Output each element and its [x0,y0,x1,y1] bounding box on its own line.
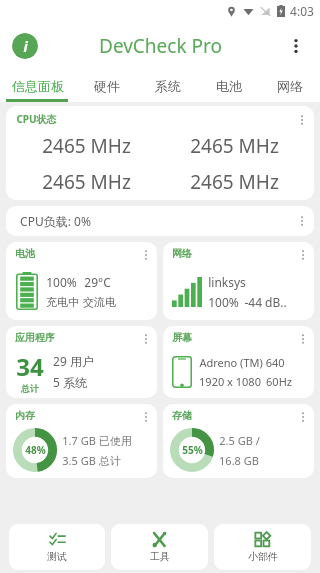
button[interactable]: CPU状态 [6,106,314,200]
button[interactable]: App info [12,33,38,59]
staticText: 系统 [155,78,181,94]
staticText: 网络 [172,247,192,260]
button[interactable]: 小部件 [214,524,311,570]
staticText: 100% [46,274,77,290]
button[interactable]: 信息面板 [0,69,76,102]
staticText: -44 dB.. [244,294,287,310]
staticText: 工具 [150,550,170,563]
staticText: 55% [182,443,203,457]
staticText: 1.7 GB 已使用 [62,433,132,448]
staticText: 2465 MHz [190,133,279,159]
staticText: 屏幕 [172,331,192,344]
staticText: 2.5 GB / [219,433,260,448]
staticText: 应用程序 [15,331,55,344]
staticText: 交流电 [83,295,116,309]
staticText: 电池 [216,78,242,94]
staticText: 29°C [84,274,111,290]
staticText: DevCheck Pro [99,33,222,59]
button[interactable]: Card options [138,409,154,425]
staticText: 小部件 [248,550,278,563]
staticText: 电池 [15,247,35,260]
staticText: 2465 MHz [190,169,279,195]
button[interactable]: Card options [294,213,310,229]
staticText: 29 用户 [53,353,94,369]
button[interactable]: 网络 [259,69,320,102]
staticText: 16.8 GB [219,453,259,468]
button[interactable]: CPU负载: 0% [6,206,314,236]
staticText: 60Hz [266,374,292,389]
button[interactable]: Card options [295,409,311,425]
staticText: 网络 [277,78,303,94]
staticText: 存储 [172,409,192,422]
staticText: 4:03 [290,3,314,19]
button[interactable]: Card options [295,247,311,263]
button[interactable]: Card options [295,331,311,347]
button[interactable]: 测试 [9,524,105,570]
button[interactable]: Card options [138,331,154,347]
button[interactable]: Card options [294,112,310,128]
button[interactable]: 存储 [163,404,314,478]
button[interactable]: 系统 [137,69,198,102]
staticText: 充电中 [46,295,79,309]
button[interactable]: 工具 [111,524,208,570]
button[interactable]: 电池 [198,69,259,102]
staticText: 1920 x 1080 [199,374,261,389]
staticText: 100% [208,294,239,310]
staticText: 48% [25,443,46,457]
button[interactable]: 应用程序 [6,326,157,398]
button[interactable]: Card options [138,247,154,263]
staticText: 2465 MHz [42,169,131,195]
staticText: 硬件 [94,78,120,94]
staticText: 信息面板 [12,78,64,94]
staticText: 34 [16,350,44,383]
button[interactable]: More options [280,30,312,62]
staticText: 3.5 GB 总计 [62,453,121,468]
staticText: 总计 [21,383,39,394]
button[interactable]: 内存 [6,404,157,478]
staticText: 2465 MHz [42,133,131,159]
staticText: 内存 [15,409,35,422]
staticText: CPU状态 [16,112,57,126]
staticText: Adreno (TM) 640 [199,355,285,370]
staticText: linksys [208,274,246,290]
staticText: 测试 [47,550,67,563]
button[interactable]: 网络 [163,242,314,320]
staticText: 5 系统 [53,374,87,390]
staticText: CPU负载: 0% [20,213,91,229]
button[interactable]: 屏幕 [163,326,314,398]
button[interactable]: 硬件 [76,69,137,102]
staticText: i [23,37,28,56]
button[interactable]: 电池 [6,242,157,320]
